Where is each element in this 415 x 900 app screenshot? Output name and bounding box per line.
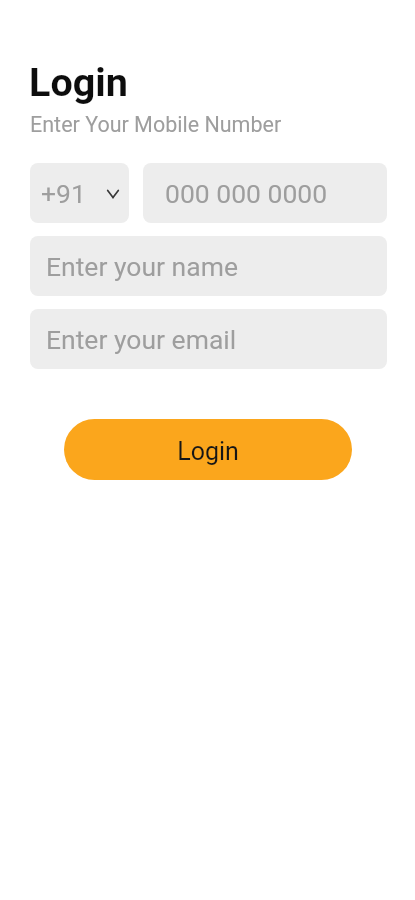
button[interactable]: Enter your name xyxy=(30,236,387,296)
staticText: Enter your name xyxy=(46,251,238,282)
staticText: 000 000 0000 xyxy=(165,178,328,209)
staticText: Enter Your Mobile Number xyxy=(30,112,282,137)
button[interactable]: Enter your email xyxy=(30,309,387,369)
staticText: Enter your email xyxy=(46,324,237,355)
staticText: +91 xyxy=(41,178,86,209)
button[interactable]: Login xyxy=(64,419,352,480)
staticText: Login xyxy=(29,59,128,105)
button[interactable]: 000 000 0000 xyxy=(143,163,387,223)
button[interactable]: Select country code, +91 xyxy=(30,163,129,223)
staticText: Login xyxy=(177,437,239,466)
